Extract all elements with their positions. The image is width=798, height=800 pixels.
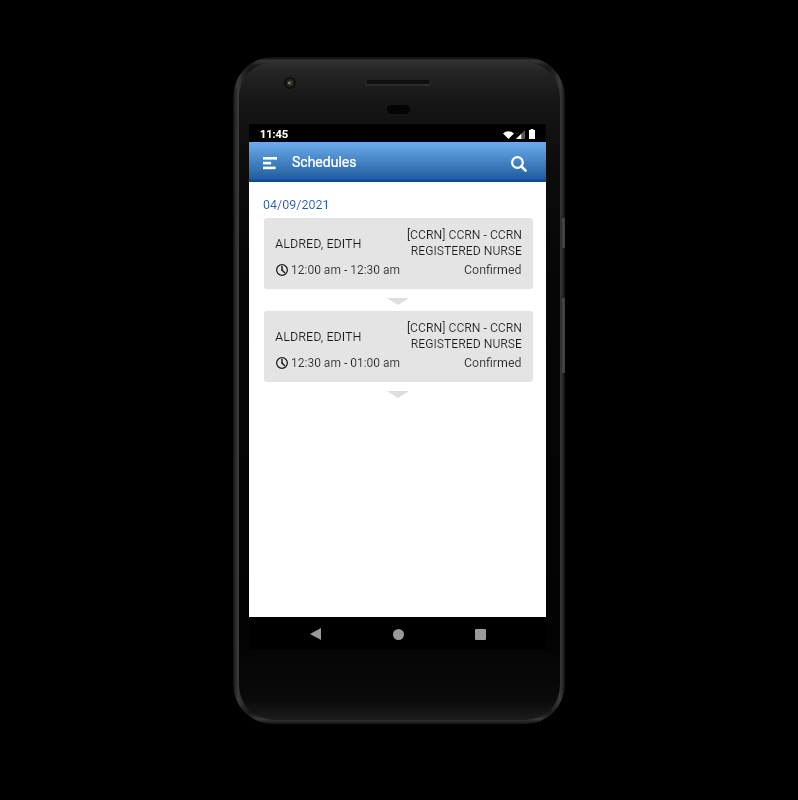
button[interactable]: Open navigation menu: [254, 147, 286, 179]
staticText: 12:30 am - 01:00 am: [291, 356, 401, 370]
button[interactable]: ALDRED, EDITH: [264, 311, 533, 382]
button[interactable]: Search: [503, 148, 535, 180]
button[interactable]: Recent apps: [464, 618, 496, 650]
staticText: 11:45: [260, 128, 288, 141]
staticText: Confirmed: [464, 262, 522, 277]
button[interactable]: Home: [382, 618, 414, 650]
staticText: 12:00 am - 12:30 am: [291, 263, 401, 277]
staticText: [CCRN] CCRN - CCRN REGISTERED NURSE: [406, 321, 522, 351]
staticText: ALDRED, EDITH: [275, 236, 362, 251]
staticText: ALDRED, EDITH: [275, 329, 362, 344]
staticText: [CCRN] CCRN - CCRN REGISTERED NURSE: [406, 228, 522, 258]
button[interactable]: Back: [299, 618, 331, 650]
staticText: Schedules: [292, 154, 357, 170]
staticText: 04/09/2021: [263, 197, 330, 212]
staticText: Confirmed: [464, 355, 522, 370]
button[interactable]: ALDRED, EDITH: [264, 218, 533, 289]
